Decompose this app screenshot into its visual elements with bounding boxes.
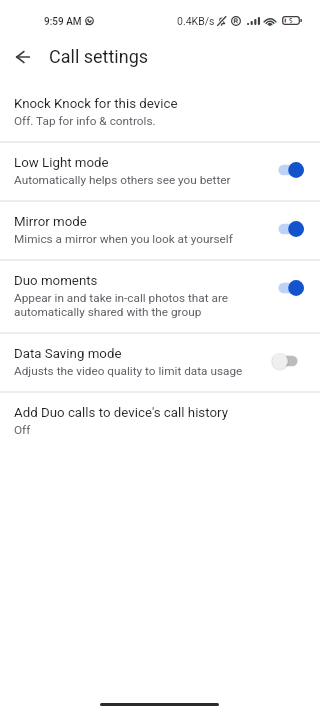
- staticText: 0.4KB/s: [177, 15, 215, 27]
- button[interactable]: Add Duo calls to device's call history: [0, 393, 320, 450]
- staticText: Low Light mode: [14, 155, 109, 171]
- staticText: 9:59 AM: [44, 16, 82, 28]
- staticText: Adjusts the video quality to limit data …: [14, 364, 243, 378]
- staticText: Duo moments: [14, 273, 98, 289]
- staticText: Call settings: [49, 46, 149, 67]
- button[interactable]: On: [272, 277, 304, 299]
- staticText: Knock Knock for this device: [14, 96, 178, 112]
- staticText: Automatically helps others see you bette…: [14, 173, 231, 187]
- staticText: Add Duo calls to device's call history: [14, 405, 228, 421]
- button[interactable]: Duo moments: [0, 261, 320, 332]
- button[interactable]: Data Saving mode: [0, 334, 320, 391]
- staticText: Off. Tap for info & controls.: [14, 114, 156, 128]
- button[interactable]: Low Light mode: [0, 143, 320, 200]
- button[interactable]: Knock Knock for this device: [0, 80, 320, 141]
- button[interactable]: Mirror mode: [0, 202, 320, 259]
- button[interactable]: On: [272, 159, 304, 181]
- staticText: Data Saving mode: [14, 346, 122, 362]
- staticText: Mirror mode: [14, 214, 87, 230]
- staticText: Off: [14, 423, 31, 437]
- staticText: Mimics a mirror when you look at yoursel…: [14, 232, 233, 246]
- staticText: automatically shared with the group: [14, 305, 202, 319]
- button[interactable]: Back: [8, 42, 38, 72]
- button[interactable]: Off: [272, 350, 304, 372]
- button[interactable]: On: [272, 218, 304, 240]
- staticText: Appear in and take in-call photos that a…: [14, 291, 229, 305]
